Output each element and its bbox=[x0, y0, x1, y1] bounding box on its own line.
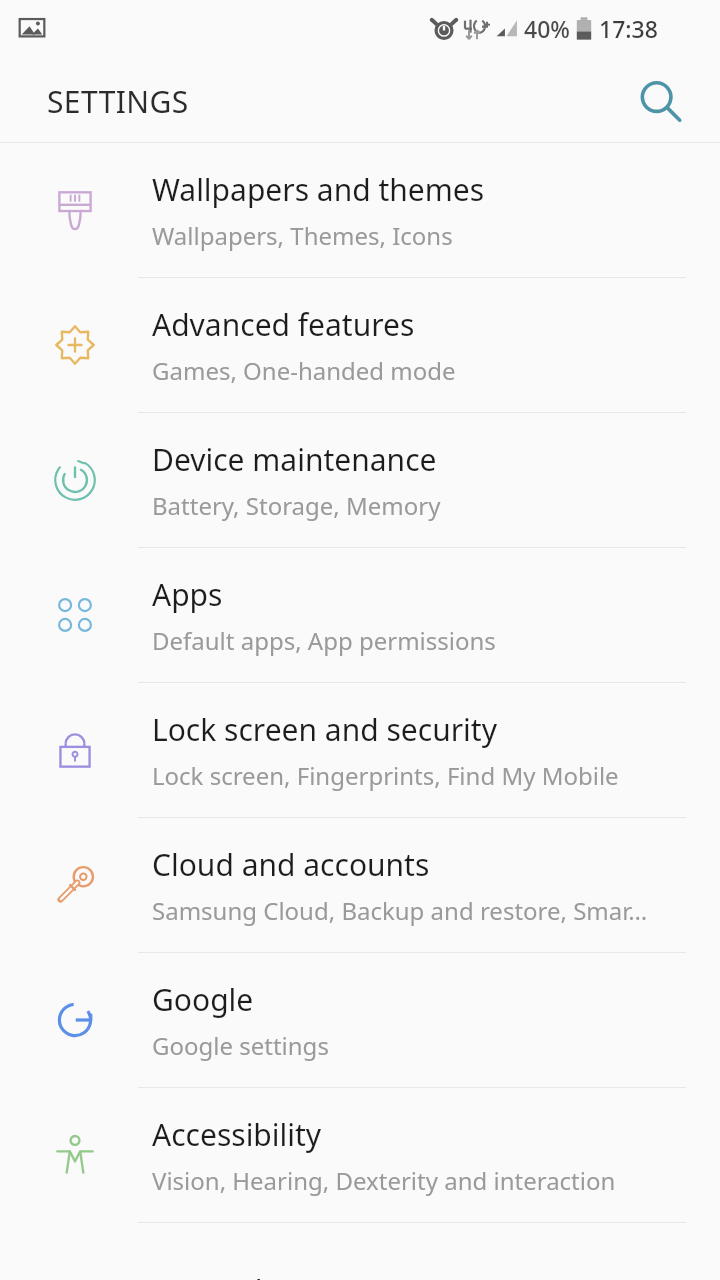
staticText: Vision, Hearing, Dexterity and interacti… bbox=[152, 1164, 616, 1197]
staticText: Samsung Cloud, Backup and restore, Smar… bbox=[152, 894, 648, 927]
button[interactable]: Device maintenance bbox=[0, 413, 720, 548]
button[interactable]: Apps bbox=[0, 548, 720, 683]
button[interactable]: Google bbox=[0, 953, 720, 1088]
staticText: Device maintenance bbox=[152, 439, 437, 480]
button[interactable]: Lock screen and security bbox=[0, 683, 720, 818]
staticText: Google bbox=[152, 979, 254, 1020]
staticText: SETTINGS bbox=[47, 81, 189, 122]
staticText: Google settings bbox=[152, 1029, 329, 1062]
staticText: Accessibility bbox=[152, 1114, 322, 1155]
staticText: 17:38 bbox=[599, 13, 658, 44]
staticText: Apps bbox=[152, 574, 223, 615]
button[interactable]: Search bbox=[632, 73, 688, 129]
staticText: Battery, Storage, Memory bbox=[152, 489, 441, 522]
staticText: 40% bbox=[524, 13, 570, 44]
button[interactable]: Accessibility bbox=[0, 1088, 720, 1223]
staticText: Wallpapers, Themes, Icons bbox=[152, 219, 453, 252]
button[interactable]: Advanced features bbox=[0, 278, 720, 413]
staticText: Advanced features bbox=[152, 304, 415, 345]
button[interactable]: Cloud and accounts bbox=[0, 818, 720, 953]
staticText: Games, One-handed mode bbox=[152, 354, 456, 387]
staticText: Default apps, App permissions bbox=[152, 624, 496, 657]
staticText: Lock screen and security bbox=[152, 709, 497, 750]
staticText: Lock screen, Fingerprints, Find My Mobil… bbox=[152, 759, 619, 792]
staticText: Cloud and accounts bbox=[152, 844, 430, 885]
button[interactable]: Wallpapers and themes bbox=[0, 143, 720, 278]
staticText: General management bbox=[152, 1270, 461, 1280]
staticText: Wallpapers and themes bbox=[152, 169, 485, 210]
